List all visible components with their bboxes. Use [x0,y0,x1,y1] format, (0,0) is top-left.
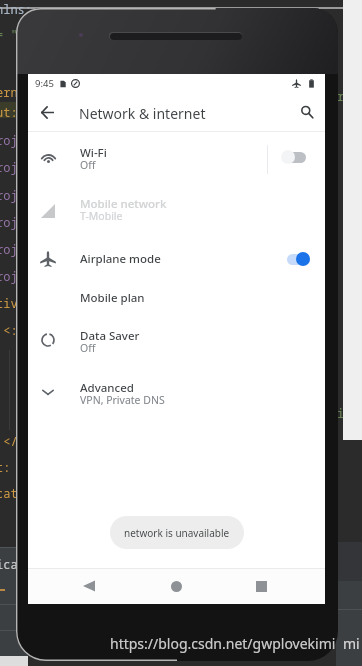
staticText: network is unavailable [124,526,230,540]
button[interactable]: Wi-Fi [28,134,325,180]
staticText: nlns: [0,1,33,17]
button[interactable]: Data Saver [28,317,325,363]
staticText: roj [0,241,18,257]
staticText: roj [0,159,18,175]
button[interactable] [280,146,314,168]
staticText: roj [0,214,18,230]
button[interactable]: Recents [240,568,282,604]
button[interactable]: Mobile plan [28,278,325,318]
button[interactable]: Home [155,568,197,604]
staticText: Network & internet [79,104,206,123]
staticText: r [337,88,345,104]
button[interactable]: network is unavailable [110,516,244,549]
staticText: tiv [0,295,18,311]
staticText: = " o [0,26,33,42]
staticText: 9:45 [35,77,54,90]
staticText: roj [0,132,18,148]
staticText: Mobile plan [80,290,145,306]
button[interactable]: Mobile network [28,185,325,231]
staticText: Airplane mode [80,251,161,267]
staticText: Mobile network [80,196,167,212]
button[interactable]: Airplane mode [28,238,325,280]
staticText: i [337,405,345,421]
staticText: ica [0,556,18,572]
button[interactable]: Advanced [28,369,325,415]
staticText: <: [0,322,18,338]
staticText: t: [0,459,11,475]
staticText: VPN, Private DNS [80,393,165,407]
staticText: Data Saver [80,328,140,344]
staticText: roj [0,268,18,284]
staticText: Off [80,158,96,172]
staticText: Wi-Fi [80,145,107,161]
button[interactable]: Search [291,96,323,128]
staticText: ern [0,84,18,100]
staticText: Off [80,341,96,355]
staticText: https://blog.csdn.net/gwplovekimi [110,634,336,653]
staticText: cat [0,485,18,501]
button[interactable]: Back [31,96,63,128]
staticText: roj [0,187,18,203]
staticText: Advanced [80,380,134,396]
staticText: ut: [0,104,18,120]
staticText: </ [0,433,18,449]
staticText: mi [343,634,360,653]
button[interactable]: Back [68,568,110,604]
staticText: T-Mobile [80,209,123,223]
button[interactable] [280,248,314,270]
